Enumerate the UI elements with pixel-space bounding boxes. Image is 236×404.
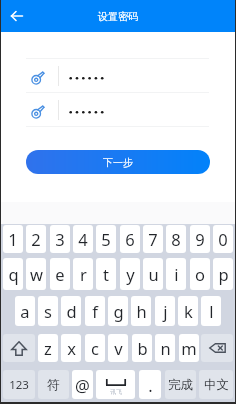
button[interactable]: 0 <box>213 225 233 253</box>
button[interactable]: 3 <box>50 225 70 253</box>
button[interactable]: a <box>15 296 35 326</box>
button[interactable]: Password field <box>26 59 209 92</box>
button[interactable]: d <box>61 296 81 326</box>
staticText: . <box>148 374 153 396</box>
staticText: d <box>66 300 77 322</box>
staticText: 完成 <box>168 377 193 393</box>
button[interactable]: . <box>139 370 161 399</box>
button[interactable]: t <box>96 258 116 290</box>
button[interactable]: f <box>85 296 105 326</box>
staticText: k <box>184 300 193 322</box>
staticText: v <box>114 337 123 359</box>
staticText: 中文 <box>204 377 229 393</box>
staticText: 2 <box>31 228 41 250</box>
button[interactable]: o <box>190 258 210 290</box>
button[interactable] <box>3 334 35 362</box>
button[interactable]: 7 <box>143 225 163 253</box>
button[interactable]: v <box>108 334 128 362</box>
staticText: n <box>160 337 171 359</box>
staticText: a <box>20 300 30 322</box>
button[interactable]: g <box>108 296 128 326</box>
button[interactable]: 下一步 <box>26 150 210 174</box>
staticText: h <box>136 300 147 322</box>
staticText: x <box>67 337 76 359</box>
staticText: 6 <box>125 228 135 250</box>
staticText: 4 <box>78 228 88 250</box>
button[interactable]: w <box>26 258 46 290</box>
staticText: 9 <box>195 228 205 250</box>
button[interactable]: 6 <box>120 225 140 253</box>
button[interactable]: x <box>61 334 81 362</box>
staticText: s <box>44 300 52 322</box>
staticText: z <box>44 337 52 359</box>
staticText: j <box>163 300 168 322</box>
button[interactable]: r <box>73 258 93 290</box>
staticText: i <box>174 263 179 285</box>
button[interactable]: Back <box>6 5 28 27</box>
staticText: 123 <box>9 377 29 393</box>
staticText: l <box>209 300 214 322</box>
staticText: 5 <box>101 228 111 250</box>
staticText: r <box>80 263 87 285</box>
button[interactable]: m <box>179 334 199 362</box>
staticText: 符 <box>47 377 60 393</box>
button[interactable]: 8 <box>166 225 186 253</box>
button[interactable]: h <box>131 296 151 326</box>
button[interactable]: 4 <box>73 225 93 253</box>
staticText: c <box>91 337 99 359</box>
staticText: @ <box>75 374 90 396</box>
button[interactable]: q <box>3 258 23 290</box>
button[interactable]: k <box>178 296 198 326</box>
staticText: 3 <box>55 228 65 250</box>
staticText: b <box>137 337 148 359</box>
staticText: p <box>218 263 229 285</box>
button[interactable]: n <box>155 334 175 362</box>
staticText: 设置密码 <box>98 10 138 23</box>
button[interactable]: 5 <box>96 225 116 253</box>
staticText: e <box>55 263 65 285</box>
staticText: m <box>181 337 197 359</box>
staticText: f <box>92 300 98 322</box>
staticText: 0 <box>218 228 228 250</box>
staticText: 8 <box>171 228 181 250</box>
button[interactable]: 1 <box>3 225 23 253</box>
button[interactable] <box>201 334 233 362</box>
button[interactable]: z <box>38 334 58 362</box>
button[interactable]: Password field <box>26 93 209 126</box>
staticText: y <box>126 263 135 285</box>
button[interactable]: b <box>132 334 152 362</box>
button[interactable]: j <box>155 296 175 326</box>
button[interactable]: i <box>166 258 186 290</box>
button[interactable]: 讯飞 <box>96 370 135 399</box>
staticText: w <box>30 263 43 285</box>
button[interactable]: c <box>85 334 105 362</box>
staticText: 1 <box>8 228 18 250</box>
button[interactable]: 完成 <box>165 370 196 399</box>
button[interactable]: 符 <box>38 370 69 399</box>
button[interactable]: u <box>143 258 163 290</box>
button[interactable]: 123 <box>3 370 35 399</box>
button[interactable]: y <box>120 258 140 290</box>
button[interactable]: 中文 <box>199 370 233 399</box>
staticText: u <box>148 263 159 285</box>
button[interactable]: 9 <box>190 225 210 253</box>
staticText: t <box>103 263 109 285</box>
staticText: q <box>8 263 19 285</box>
staticText: 7 <box>148 228 158 250</box>
button[interactable]: @ <box>72 370 93 399</box>
button[interactable]: s <box>38 296 58 326</box>
button[interactable]: 2 <box>26 225 46 253</box>
button[interactable]: e <box>50 258 70 290</box>
staticText: 讯飞 <box>110 388 122 396</box>
staticText: g <box>113 300 124 322</box>
button[interactable]: l <box>201 296 221 326</box>
staticText: 下一步 <box>103 156 133 169</box>
button[interactable]: p <box>213 258 233 290</box>
staticText: o <box>195 263 205 285</box>
